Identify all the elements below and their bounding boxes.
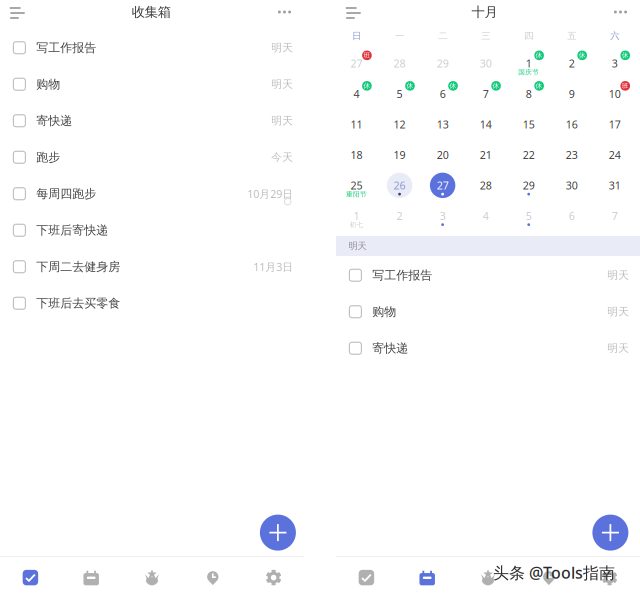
button[interactable]: 16: [550, 111, 593, 142]
staticText: 7: [483, 87, 489, 101]
staticText: 27: [350, 56, 362, 70]
button[interactable]: 17: [593, 111, 636, 142]
button[interactable]: 1: [335, 203, 378, 233]
button[interactable]: Add task: [260, 515, 296, 551]
button[interactable]: Calendar: [61, 560, 122, 593]
button[interactable]: 28: [378, 50, 421, 81]
button[interactable]: 26: [378, 172, 421, 203]
button[interactable]: 29: [507, 172, 550, 203]
button[interactable]: 30: [550, 172, 593, 203]
button[interactable]: Focus timer: [518, 560, 579, 593]
button[interactable]: 3: [593, 50, 636, 81]
button[interactable]: 11: [335, 111, 378, 142]
button[interactable]: 18: [335, 142, 378, 172]
button[interactable]: Focus timer: [182, 560, 243, 593]
button[interactable]: Tasks: [0, 560, 61, 593]
staticText: 明天: [607, 305, 629, 318]
button[interactable]: 21: [464, 142, 507, 172]
button[interactable]: 下班后去买零食: [0, 285, 304, 321]
button[interactable]: 27: [335, 50, 378, 81]
button[interactable]: 22: [507, 142, 550, 172]
button[interactable]: Achievements: [458, 560, 518, 593]
button[interactable]: 1: [507, 50, 550, 81]
staticText: 一: [395, 30, 404, 42]
button[interactable]: 跑步: [0, 139, 304, 175]
button[interactable]: Menu: [339, 0, 367, 26]
button[interactable]: 15: [507, 111, 550, 142]
staticText: 21: [480, 148, 492, 162]
staticText: 4: [483, 209, 489, 223]
button[interactable]: Calendar: [397, 560, 458, 593]
button[interactable]: 购物: [0, 66, 304, 102]
button[interactable]: 2: [378, 203, 421, 233]
button[interactable]: 27: [421, 172, 464, 203]
button[interactable]: 7: [593, 203, 636, 233]
button[interactable]: 19: [378, 142, 421, 172]
button[interactable]: 下班后寄快递: [0, 212, 304, 248]
button[interactable]: Settings: [579, 560, 640, 593]
button[interactable]: 2: [550, 50, 593, 81]
button[interactable]: 购物: [336, 293, 640, 330]
button[interactable]: 4: [335, 81, 378, 111]
button[interactable]: 8: [507, 81, 550, 111]
button[interactable]: Tasks: [336, 560, 397, 593]
staticText: 15: [523, 117, 535, 131]
button[interactable]: More options: [270, 0, 298, 25]
button[interactable]: 寄快递: [336, 330, 640, 366]
button[interactable]: 5: [507, 203, 550, 233]
button[interactable]: 写工作报告: [336, 257, 640, 293]
button[interactable]: Add task: [592, 515, 628, 551]
staticText: 3: [440, 209, 446, 223]
staticText: 日: [352, 30, 361, 42]
staticText: 明天: [607, 269, 629, 282]
button[interactable]: 寄快递: [0, 102, 304, 139]
button[interactable]: 写工作报告: [0, 29, 304, 66]
staticText: 29: [437, 56, 449, 70]
button[interactable]: 每周四跑步: [0, 175, 304, 212]
button[interactable]: 12: [378, 111, 421, 142]
button[interactable]: 9: [550, 81, 593, 111]
button[interactable]: Achievements: [122, 560, 182, 593]
button[interactable]: 5: [378, 81, 421, 111]
button[interactable]: 7: [464, 81, 507, 111]
button[interactable]: More options: [606, 0, 634, 25]
button[interactable]: Menu: [3, 0, 31, 26]
button[interactable]: 25: [335, 172, 378, 203]
staticText: 19: [394, 148, 406, 162]
staticText: 7: [612, 209, 618, 223]
staticText: 27: [437, 178, 449, 192]
staticText: 18: [350, 148, 362, 162]
staticText: 初七: [349, 221, 363, 229]
staticText: 明天: [271, 78, 293, 91]
staticText: 明天: [271, 114, 293, 127]
button[interactable]: 6: [550, 203, 593, 233]
staticText: 2: [397, 209, 403, 223]
staticText: 寄快递: [36, 113, 72, 128]
button[interactable]: 29: [421, 50, 464, 81]
staticText: 休: [406, 82, 413, 90]
button[interactable]: 13: [421, 111, 464, 142]
button[interactable]: 14: [464, 111, 507, 142]
button[interactable]: 10: [593, 81, 636, 111]
button[interactable]: 23: [550, 142, 593, 172]
button[interactable]: Settings: [243, 560, 304, 593]
staticText: 明天: [271, 41, 293, 54]
staticText: 下周二去健身房: [36, 259, 120, 274]
staticText: 1: [353, 209, 359, 223]
staticText: 收集箱: [132, 4, 171, 20]
button[interactable]: 31: [593, 172, 636, 203]
button[interactable]: 6: [421, 81, 464, 111]
staticText: 16: [566, 117, 578, 131]
button[interactable]: 24: [593, 142, 636, 172]
button[interactable]: 28: [464, 172, 507, 203]
staticText: 写工作报告: [36, 40, 96, 55]
staticText: 下班后寄快递: [36, 223, 108, 238]
button[interactable]: 20: [421, 142, 464, 172]
staticText: 26: [394, 178, 406, 192]
button[interactable]: 30: [464, 50, 507, 81]
button[interactable]: 4: [464, 203, 507, 233]
staticText: 头条 @Tools指南: [493, 562, 615, 583]
staticText: 10: [609, 87, 621, 101]
button[interactable]: 下周二去健身房: [0, 248, 304, 285]
button[interactable]: 3: [421, 203, 464, 233]
